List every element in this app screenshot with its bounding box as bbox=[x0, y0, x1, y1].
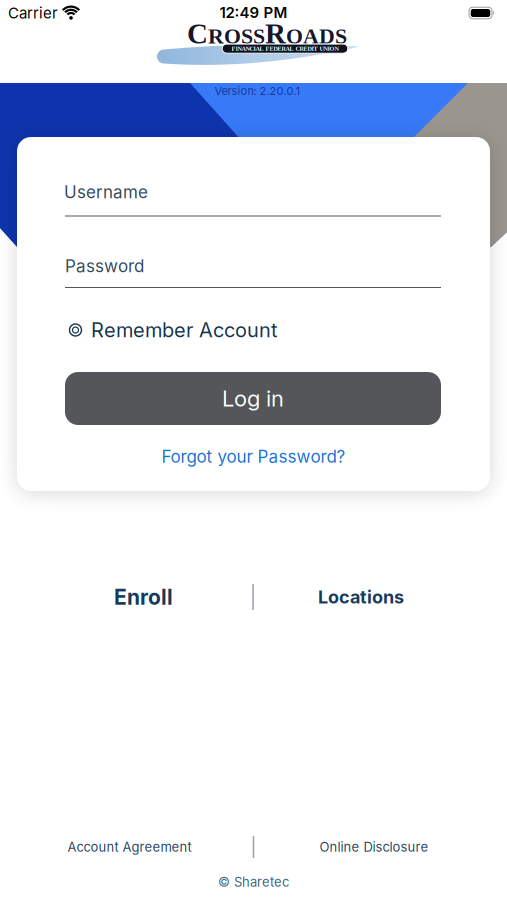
staticText: 12:49 PM bbox=[219, 3, 287, 21]
staticText: Online Disclosure bbox=[319, 839, 428, 855]
staticText: R bbox=[265, 17, 286, 50]
button[interactable]: Online Disclosure bbox=[319, 839, 428, 855]
staticText: ROSS bbox=[208, 24, 265, 48]
button[interactable]: Remember Account bbox=[69, 318, 445, 342]
staticText: OADS bbox=[286, 24, 347, 48]
button[interactable]: Log in bbox=[65, 372, 441, 425]
button[interactable]: Forgot your Password? bbox=[161, 446, 345, 467]
staticText: Version: 2.20.0.1 bbox=[214, 84, 299, 98]
staticText: Forgot your Password? bbox=[161, 446, 345, 467]
staticText: Account Agreement bbox=[67, 839, 191, 855]
staticText: Locations bbox=[318, 586, 404, 608]
staticText: © Sharetec bbox=[218, 874, 289, 890]
staticText: Log in bbox=[222, 385, 284, 412]
staticText: Username bbox=[64, 182, 148, 202]
staticText: FINANCIAL FEDERAL CREDIT UNION bbox=[231, 45, 338, 52]
staticText: Carrier bbox=[8, 4, 58, 22]
button[interactable]: Account Agreement bbox=[67, 839, 191, 855]
staticText: Enroll bbox=[114, 584, 173, 610]
staticText: Remember Account bbox=[91, 318, 278, 342]
staticText: Password bbox=[65, 256, 144, 276]
button[interactable]: Locations bbox=[318, 586, 404, 608]
button[interactable]: Enroll bbox=[114, 584, 173, 610]
staticText: C bbox=[187, 17, 208, 50]
